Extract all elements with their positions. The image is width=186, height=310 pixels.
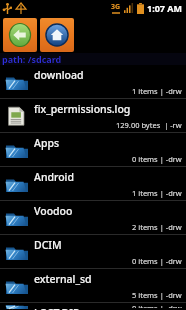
button[interactable]: Back <box>3 18 37 52</box>
staticText: 0 items | -drw <box>132 256 182 266</box>
staticText: download <box>34 68 84 82</box>
staticText: fix_permissions.log <box>34 102 131 116</box>
staticText: 129.00 bytes | -rw <box>116 120 182 130</box>
staticText: 5 items | -drw <box>132 290 182 300</box>
button[interactable]: external_sd <box>0 269 186 302</box>
staticText: path: /sdcard <box>2 53 62 65</box>
staticText: 2 items | -drw <box>132 222 182 232</box>
button[interactable]: path: /sdcard <box>0 53 186 65</box>
staticText: Voodoo <box>34 204 73 218</box>
staticText: Apps <box>34 136 60 150</box>
button[interactable]: download <box>0 65 186 98</box>
button[interactable]: Apps <box>0 133 186 166</box>
button[interactable]: LOST.DIR <box>0 303 186 310</box>
staticText: DCIM <box>34 238 62 252</box>
button[interactable]: Android <box>0 167 186 200</box>
button[interactable]: Home <box>40 18 74 52</box>
button[interactable]: DCIM <box>0 235 186 268</box>
staticText: Android <box>34 170 74 184</box>
staticText: 0 items | -drw <box>132 154 182 164</box>
staticText: 0 items | -drw <box>132 303 182 308</box>
staticText: 1 items | -drw <box>132 86 182 96</box>
button[interactable]: Voodoo <box>0 201 186 234</box>
staticText: 1 items | -drw <box>132 188 182 198</box>
staticText: 1:07 AM <box>147 2 183 14</box>
staticText: LOST.DIR <box>34 306 80 310</box>
staticText: 3G <box>111 2 121 12</box>
staticText: external_sd <box>34 272 92 286</box>
button[interactable]: fix_permissions.log <box>0 99 186 132</box>
